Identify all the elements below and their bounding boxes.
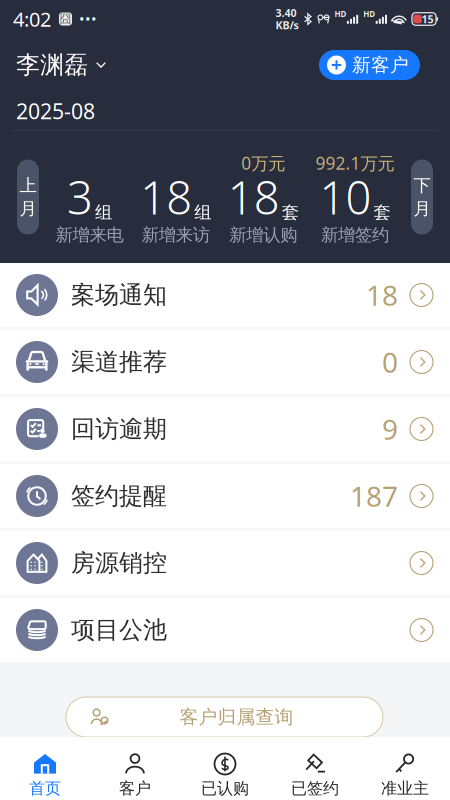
button[interactable]: 0万元	[228, 149, 299, 245]
staticText: 回访逾期	[71, 414, 167, 444]
button[interactable]: 上月	[17, 159, 39, 234]
button[interactable]: 项目公池	[0, 598, 450, 662]
button[interactable]	[140, 149, 211, 245]
staticText: 组	[194, 202, 211, 223]
button[interactable]: 渠道推荐	[0, 330, 450, 394]
staticText: 18	[366, 276, 398, 314]
button[interactable]: 客户归属查询	[66, 697, 383, 737]
staticText: 0万元	[241, 151, 285, 174]
staticText: 992.1万元	[315, 151, 394, 174]
staticText: 3	[67, 167, 93, 227]
staticText: 客户归属查询	[179, 705, 293, 728]
button[interactable]: 案场通知	[0, 263, 450, 327]
button[interactable]: 新客户	[319, 50, 420, 80]
button[interactable]: 李渊磊	[16, 50, 106, 80]
staticText: 4:02	[13, 6, 51, 32]
staticText: 月	[19, 198, 36, 219]
button[interactable]: 签约提醒	[0, 464, 450, 528]
staticText: 10	[319, 167, 371, 227]
button[interactable]: 已签约	[270, 737, 360, 800]
staticText: 2025-08	[16, 97, 95, 125]
staticText: 房源销控	[71, 548, 167, 578]
staticText: 18	[140, 167, 192, 227]
staticText: 组	[95, 202, 112, 223]
staticText: 已签约	[291, 779, 339, 798]
button[interactable]: 992.1万元	[315, 149, 394, 245]
staticText: 15	[421, 12, 433, 26]
staticText: KB/s	[275, 18, 298, 32]
staticText: 李渊磊	[16, 50, 88, 80]
button[interactable]: 回访逾期	[0, 397, 450, 461]
button[interactable]: 首页	[0, 737, 90, 800]
staticText: 项目公池	[71, 615, 167, 645]
staticText: 月	[413, 198, 430, 219]
button[interactable]: 下月	[411, 159, 433, 234]
staticText: 客户	[119, 779, 151, 798]
staticText: 首页	[29, 779, 61, 798]
button[interactable]: 房源销控	[0, 531, 450, 595]
staticText: 案场通知	[71, 280, 167, 310]
button[interactable]: 已认购	[180, 737, 270, 800]
button[interactable]: 客户	[90, 737, 180, 800]
staticText: 18	[228, 167, 280, 227]
staticText: HD	[363, 9, 375, 19]
staticText: 已认购	[201, 779, 249, 798]
staticText: 准业主	[381, 779, 429, 798]
staticText: 新增签约	[321, 224, 389, 246]
button[interactable]	[56, 149, 124, 245]
staticText: 签约提醒	[71, 481, 167, 511]
staticText: 新增来访	[142, 224, 210, 246]
staticText: 套	[373, 202, 390, 223]
staticText: 上	[19, 175, 36, 196]
staticText: 9	[382, 410, 398, 448]
staticText: 囧	[59, 12, 71, 26]
staticText: 3.40	[275, 6, 296, 20]
staticText: 187	[350, 477, 398, 515]
staticText: 渠道推荐	[71, 347, 167, 377]
staticText: 套	[282, 202, 299, 223]
staticText: 新客户	[352, 53, 409, 76]
staticText: 新增认购	[229, 224, 297, 246]
staticText: HD	[334, 9, 346, 19]
staticText: •••	[79, 9, 97, 29]
staticText: 新增来电	[56, 224, 124, 246]
button[interactable]: 准业主	[360, 737, 450, 800]
staticText: 0	[382, 343, 398, 381]
staticText: 下	[413, 175, 430, 196]
